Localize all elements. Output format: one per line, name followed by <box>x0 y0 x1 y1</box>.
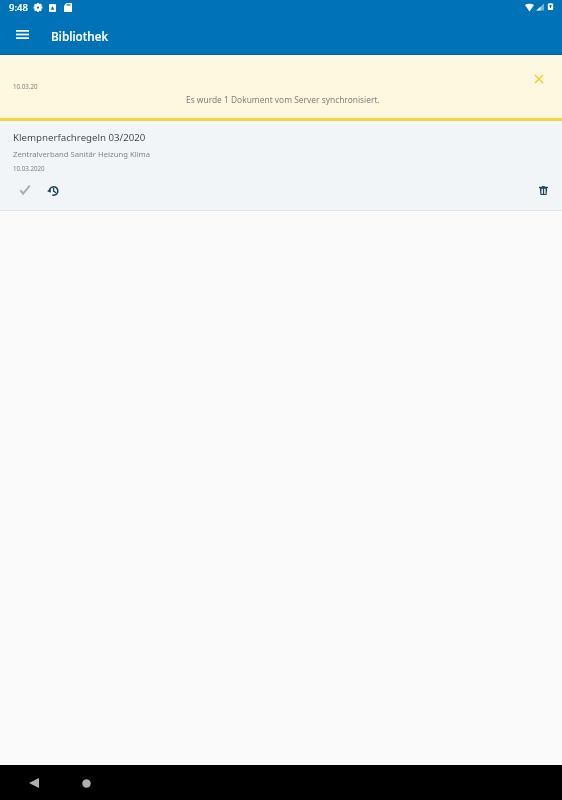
button[interactable]: Klempnerfachregeln 03/2020 <box>0 124 562 210</box>
button[interactable]: Open navigation menu <box>6 18 38 50</box>
button[interactable]: Back <box>20 769 48 797</box>
button[interactable]: Version history <box>41 180 63 202</box>
button[interactable]: Downloaded <box>14 178 36 200</box>
button[interactable]: Home <box>72 769 100 797</box>
staticText: Es wurde 1 Dokument vom Server synchroni… <box>186 94 380 105</box>
staticText: 9:48 <box>9 1 28 14</box>
staticText: 10.03.2020 <box>13 164 45 172</box>
staticText: 10.03.20 <box>13 82 38 90</box>
staticText: Klempnerfachregeln 03/2020 <box>13 131 146 144</box>
button[interactable]: Dismiss notification <box>528 68 549 89</box>
staticText: Zentralverband Sanitär Heizung Klima <box>13 149 151 159</box>
staticText: Bibliothek <box>51 28 109 44</box>
button[interactable]: Delete document <box>532 179 554 201</box>
